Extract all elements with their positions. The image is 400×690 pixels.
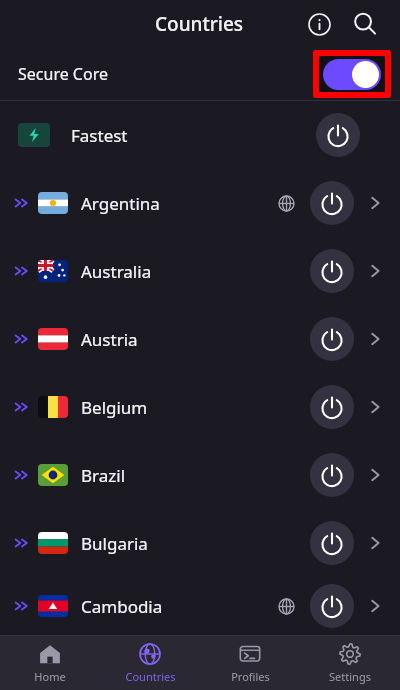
button[interactable]: Brazil [0, 441, 400, 509]
button[interactable]: Bulgaria [0, 509, 400, 577]
button[interactable]: Open Argentina [360, 188, 390, 218]
staticText: Settings [329, 669, 371, 684]
button[interactable]: Connect [310, 317, 354, 361]
button[interactable]: Fastest [0, 101, 400, 169]
button[interactable]: Countries [100, 636, 200, 690]
button[interactable]: Secure Core toggle [323, 59, 381, 90]
button[interactable]: Open Austria [360, 324, 390, 354]
staticText: Bulgaria [81, 532, 148, 555]
staticText: Cambodia [81, 595, 163, 618]
button[interactable]: Open Belgium [360, 392, 390, 422]
button[interactable]: Open Australia [360, 256, 390, 286]
staticText: Profiles [231, 669, 270, 684]
button[interactable]: Australia [0, 237, 400, 305]
button[interactable]: Settings [300, 636, 400, 690]
button[interactable]: Open Bulgaria [360, 528, 390, 558]
staticText: Argentina [81, 192, 160, 215]
button[interactable]: Connect [310, 584, 354, 628]
button[interactable]: Connect [310, 453, 354, 497]
button[interactable]: Connect [310, 181, 354, 225]
button[interactable]: Secure Core [0, 48, 400, 100]
button[interactable]: Argentina [0, 169, 400, 237]
button[interactable]: Connect [316, 113, 360, 157]
button[interactable]: Information [298, 3, 340, 45]
staticText: Brazil [81, 464, 126, 487]
button[interactable]: Open Cambodia [360, 591, 390, 621]
button[interactable]: Austria [0, 305, 400, 373]
button[interactable]: Open Brazil [360, 460, 390, 490]
staticText: Fastest [71, 124, 128, 147]
button[interactable]: Profiles [200, 636, 300, 690]
button[interactable]: Home [0, 636, 100, 690]
staticText: Australia [81, 260, 152, 283]
staticText: Countries [125, 669, 176, 684]
button[interactable]: Connect [310, 249, 354, 293]
button[interactable]: Belgium [0, 373, 400, 441]
staticText: Countries [155, 11, 244, 37]
staticText: Austria [81, 328, 138, 351]
staticText: Home [34, 669, 66, 684]
button[interactable]: Cambodia [0, 577, 400, 635]
button[interactable]: Connect [310, 521, 354, 565]
staticText: Secure Core [18, 63, 108, 85]
button[interactable]: Search [344, 3, 386, 45]
staticText: Belgium [81, 396, 148, 419]
button[interactable]: Connect [310, 385, 354, 429]
